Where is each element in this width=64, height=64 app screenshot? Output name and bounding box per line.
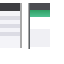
button[interactable] bbox=[30, 10, 50, 17]
